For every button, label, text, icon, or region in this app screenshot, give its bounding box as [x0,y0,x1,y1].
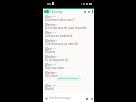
button[interactable]: Marine [45,71,92,79]
staticText: Lounge [52,10,63,14]
staticText: Very bien [45,74,58,78]
staticText: 12:38 [51,84,57,87]
staticText: Alex [45,15,52,19]
button[interactable]: Search [87,10,90,13]
button[interactable]: Alex [45,63,92,71]
staticText: Alex [45,84,52,88]
staticText: 12:15 [51,47,57,50]
staticText: surtout en weekend [45,34,73,38]
staticText: Marine [45,55,56,59]
button[interactable]: Alex [45,31,92,39]
button[interactable]: Jump to first unread [56,76,81,81]
staticText: Ok puis [45,50,56,54]
staticText: Marine [45,39,56,43]
button[interactable]: More options [91,10,94,13]
staticText: 12:09 [51,31,57,34]
staticText: 12:12 [52,39,58,42]
button[interactable]: Alex [45,47,92,55]
button[interactable]: Attach file [85,97,88,100]
staticText: 12:20 [52,55,58,58]
staticText: 12:31 [52,71,58,74]
staticText: Marine [45,71,56,75]
button[interactable]: Add attachment [44,96,48,100]
staticText: Hey mon amis [45,66,65,70]
staticText: Tu as toujours ça [45,58,68,62]
button[interactable]: Threads [83,10,86,13]
staticText: Comment allez-vous ? [45,18,75,22]
staticText: C'est bon que ça marche [45,42,79,46]
button[interactable]: Marine [45,23,92,31]
staticText: Alex [45,63,52,67]
staticText: 12:04 [51,15,57,18]
button[interactable]: Marine [45,55,92,63]
button[interactable]: Marine [45,39,92,47]
staticText: Bisou!! [45,87,55,91]
staticText: Alex [45,31,52,35]
staticText: Alex [45,47,52,51]
button[interactable]: Back [44,10,49,13]
staticText: 12:06 [52,23,58,26]
button[interactable]: Alex [45,15,92,23]
staticText: Send a message… [49,96,73,100]
staticText: Marine [45,23,56,27]
button[interactable]: Record voice message [90,97,93,100]
staticText: Jump to first unread [58,77,79,80]
staticText: Je ne sais pas de quoi tu parles [45,26,87,30]
button[interactable]: Alex [45,84,92,92]
staticText: 12:24 [51,63,57,66]
